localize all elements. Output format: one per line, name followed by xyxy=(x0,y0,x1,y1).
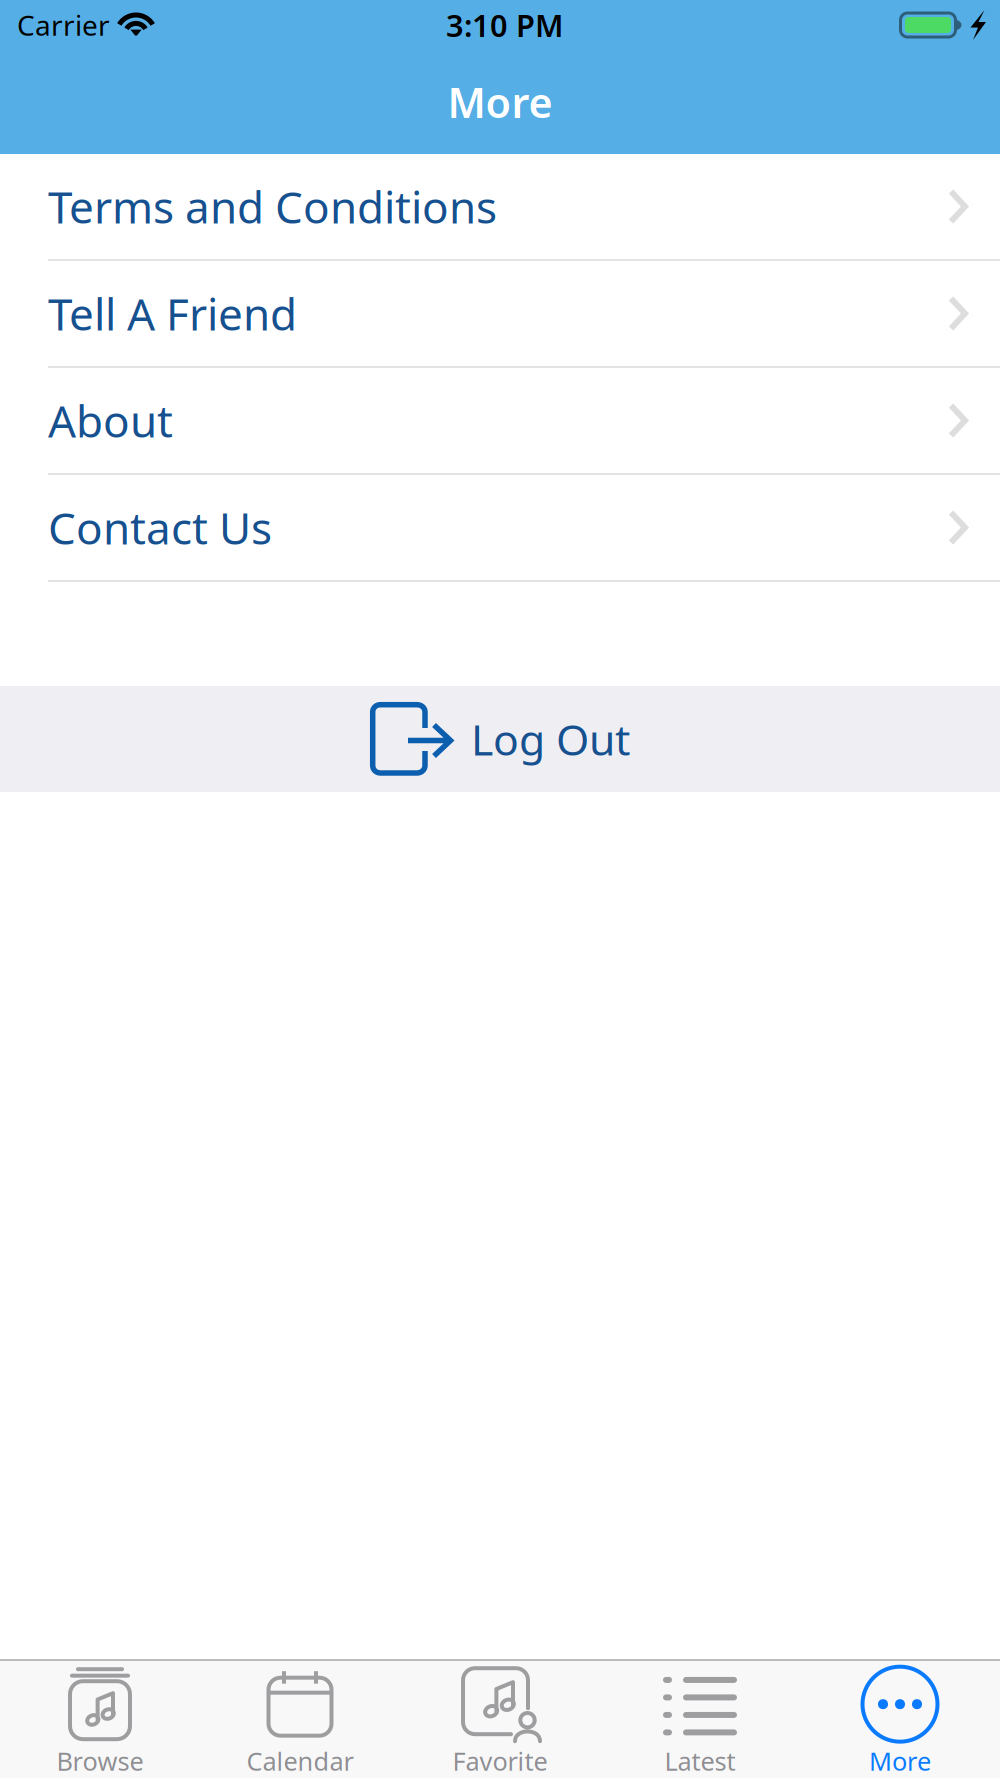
staticText: More xyxy=(869,1744,931,1778)
staticText: Contact Us xyxy=(48,498,272,557)
button[interactable]: Browse xyxy=(0,1661,200,1778)
staticText: Latest xyxy=(664,1744,735,1778)
staticText: Favorite xyxy=(452,1744,547,1778)
button[interactable]: Log Out xyxy=(0,686,1000,792)
staticText: 3:10 PM xyxy=(446,5,563,45)
staticText: More xyxy=(447,75,552,129)
staticText: Terms and Conditions xyxy=(48,177,497,236)
staticText: Browse xyxy=(56,1744,143,1778)
staticText: About xyxy=(48,391,173,450)
button[interactable]: Latest xyxy=(600,1661,800,1778)
button[interactable]: Favorite xyxy=(400,1661,600,1778)
button[interactable]: Terms and Conditions xyxy=(0,154,1000,261)
button[interactable]: About xyxy=(0,368,1000,475)
button[interactable]: More xyxy=(800,1661,1000,1778)
staticText: Calendar xyxy=(246,1744,353,1778)
staticText: Log Out xyxy=(471,711,630,767)
button[interactable]: Calendar xyxy=(200,1661,400,1778)
button[interactable]: Contact Us xyxy=(0,475,1000,582)
staticText: Tell A Friend xyxy=(48,284,297,343)
button[interactable]: Tell A Friend xyxy=(0,261,1000,368)
staticText: Carrier xyxy=(17,6,110,44)
